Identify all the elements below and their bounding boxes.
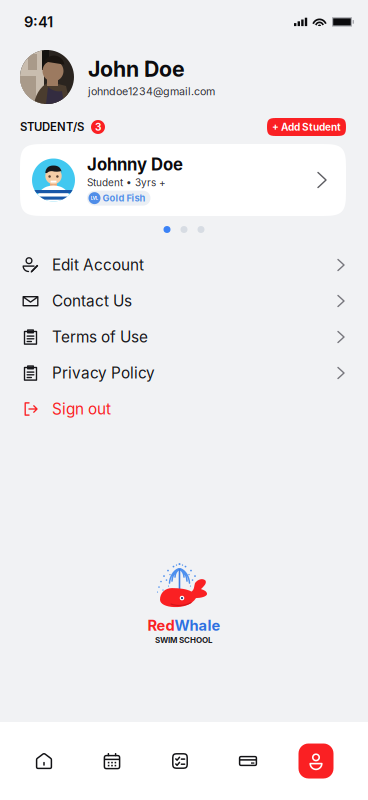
button[interactable]: Tasks <box>146 722 214 800</box>
staticText: LVL <box>90 195 98 201</box>
staticText: + Add Student <box>272 121 341 133</box>
button[interactable]: Home <box>10 722 78 800</box>
staticText: Sign out <box>52 400 111 418</box>
staticText: Whale <box>174 617 220 634</box>
staticText: Terms of Use <box>52 328 148 346</box>
button[interactable]: Edit Account <box>0 247 368 283</box>
staticText: 3 <box>95 121 101 133</box>
button[interactable]: Sign out <box>0 391 368 427</box>
staticText: 9:41 <box>24 13 53 31</box>
staticText: Johnny Doe <box>87 154 183 175</box>
button[interactable]: + Add Student <box>267 118 346 136</box>
button[interactable]: Contact Us <box>0 283 368 319</box>
staticText: Student • 3yrs + <box>87 176 166 189</box>
button[interactable]: Profile <box>282 722 350 800</box>
staticText: Privacy Policy <box>52 364 155 382</box>
button[interactable]: Calendar <box>78 722 146 800</box>
staticText: Contact Us <box>52 292 132 310</box>
staticText: Red <box>147 617 174 634</box>
button[interactable]: Johnny Doe <box>0 144 368 216</box>
staticText: STUDENT/S <box>20 120 84 134</box>
staticText: Gold Fish <box>102 192 145 204</box>
staticText: Edit Account <box>52 256 144 274</box>
staticText: John Doe <box>88 56 185 82</box>
button[interactable]: Privacy Policy <box>0 355 368 391</box>
staticText: johndoe1234@gmail.com <box>88 85 215 98</box>
staticText: SWIM SCHOOL <box>155 635 213 645</box>
button[interactable]: Payments <box>214 722 282 800</box>
button[interactable]: Terms of Use <box>0 319 368 355</box>
